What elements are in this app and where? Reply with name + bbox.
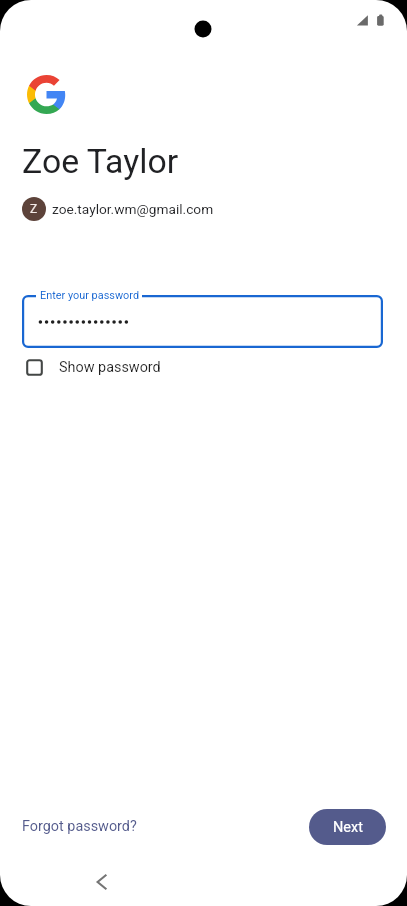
button[interactable]: Show password — [19, 352, 168, 383]
button[interactable]: Z — [22, 197, 214, 221]
staticText: zoe.taylor.wm@gmail.com — [52, 201, 214, 217]
button[interactable]: Back — [77, 860, 127, 904]
staticText: Next — [333, 819, 363, 836]
staticText: Show password — [59, 359, 161, 376]
staticText: Zoe Taylor — [22, 142, 179, 182]
button[interactable]: Forgot password? — [12, 810, 147, 843]
button[interactable]: Next — [309, 809, 386, 845]
staticText: Enter your password — [40, 289, 140, 302]
button[interactable]: Enter your password — [22, 295, 383, 348]
staticText: Z — [30, 202, 38, 216]
